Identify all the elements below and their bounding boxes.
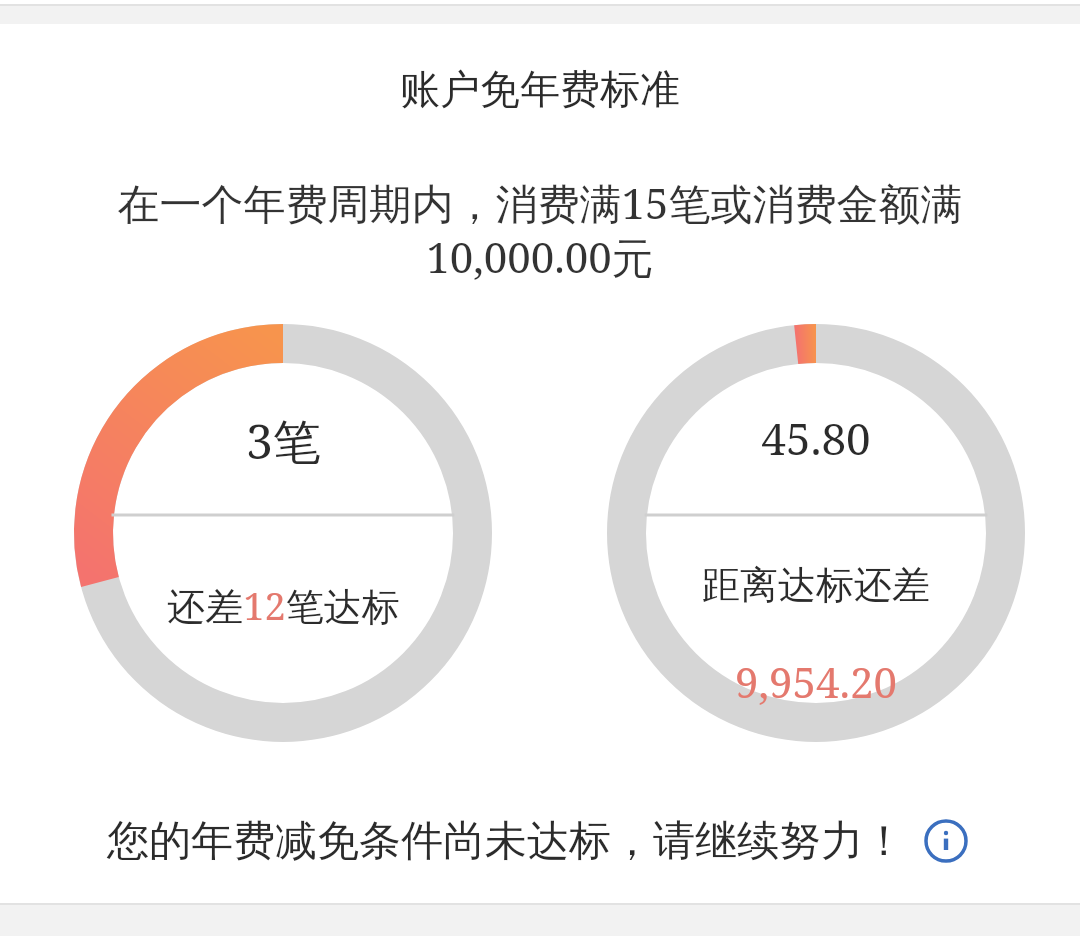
staticText: 还差12笔达标 xyxy=(167,579,400,631)
staticText: 3笔 xyxy=(246,408,321,474)
button[interactable]: 3笔 xyxy=(74,324,492,742)
staticText: 在一个年费周期内，消费满15笔或消费金额满10,000.00元 xyxy=(56,174,1024,285)
staticText: 9,954.20 xyxy=(735,653,897,710)
button[interactable]: 更多说明 xyxy=(919,814,973,868)
button[interactable]: 45.80 xyxy=(607,324,1025,742)
staticText: 账户免年费标准 xyxy=(400,64,680,114)
staticText: 您的年费减免条件尚未达标，请继续努力！ xyxy=(107,815,905,868)
staticText: 45.80 xyxy=(761,408,871,468)
staticText: 距离达标还差 xyxy=(702,561,930,609)
